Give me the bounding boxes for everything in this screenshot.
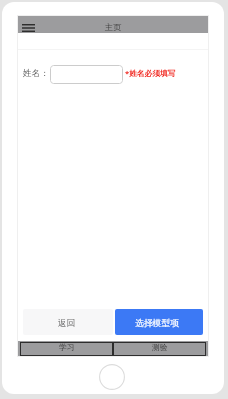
button[interactable]: [50, 65, 123, 84]
button[interactable]: 返回: [23, 309, 113, 335]
staticText: 测验: [152, 342, 168, 352]
staticText: *姓名必须填写: [125, 68, 176, 79]
staticText: 主页: [105, 22, 122, 32]
staticText: 姓名：: [23, 68, 49, 79]
staticText: 选择模型项: [135, 318, 179, 329]
staticText: 学习: [59, 342, 75, 352]
button[interactable]: 学习: [20, 342, 113, 356]
button[interactable]: 选择模型项: [115, 309, 203, 335]
button[interactable]: 测验: [113, 342, 206, 356]
staticText: 返回: [58, 318, 76, 329]
button[interactable]: Menu: [19, 19, 37, 37]
